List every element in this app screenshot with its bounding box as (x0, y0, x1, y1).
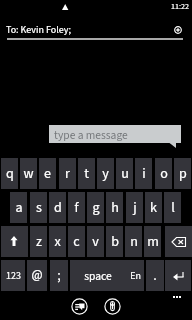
staticText: m (147, 232, 159, 252)
button[interactable]: g (87, 192, 104, 223)
button[interactable]: New message (71, 298, 88, 315)
staticText: l (171, 198, 175, 218)
staticText: n (130, 232, 138, 252)
staticText: u (121, 164, 129, 184)
staticText: h (111, 198, 119, 218)
button[interactable]: Attach (104, 298, 121, 315)
button[interactable]: x (49, 226, 66, 257)
staticText: w (23, 164, 34, 184)
staticText: space (84, 268, 112, 284)
button[interactable]: Enter (165, 260, 191, 291)
button[interactable]: j (126, 192, 143, 223)
button[interactable]: t (78, 158, 95, 189)
button[interactable]: e (39, 158, 56, 189)
button[interactable]: Add recipient (172, 24, 184, 36)
staticText: 123 (6, 269, 21, 283)
button[interactable]: u (116, 158, 133, 189)
button[interactable]: . (146, 260, 164, 291)
staticText: t (84, 164, 89, 184)
staticText: a (15, 198, 23, 218)
staticText: i (142, 164, 146, 184)
staticText: k (150, 198, 157, 218)
staticText: 11:22 (171, 1, 189, 12)
staticText: p (179, 164, 187, 184)
staticText: . (153, 266, 157, 286)
staticText: f (74, 198, 79, 218)
button[interactable]: ; (50, 260, 68, 291)
staticText: @ (31, 266, 43, 285)
button[interactable]: v (87, 226, 104, 257)
button[interactable]: p (174, 158, 191, 189)
button[interactable]: o (155, 158, 172, 189)
button[interactable]: n (125, 226, 142, 257)
staticText: type a message (54, 127, 128, 143)
button[interactable]: 123 (1, 260, 25, 291)
staticText: v (92, 232, 99, 252)
button[interactable]: f (68, 192, 85, 223)
button[interactable]: b (106, 226, 123, 257)
button[interactable]: z (30, 226, 47, 257)
button[interactable]: w (20, 158, 37, 189)
staticText: q (6, 164, 14, 184)
staticText: d (54, 198, 62, 218)
staticText: En (130, 269, 141, 283)
button[interactable]: More options (173, 296, 181, 298)
button[interactable]: y (97, 158, 114, 189)
staticText: b (111, 232, 119, 252)
staticText: g (92, 198, 100, 218)
staticText: ; (57, 266, 61, 286)
staticText: j (133, 198, 137, 218)
button[interactable]: space (70, 260, 126, 291)
button[interactable]: i (135, 158, 152, 189)
button[interactable]: h (106, 192, 123, 223)
staticText: y (102, 164, 109, 184)
staticText: To: Kevin Foley; (6, 23, 71, 37)
button[interactable]: q (1, 158, 18, 189)
staticText: x (54, 232, 61, 252)
button[interactable]: m (144, 226, 161, 257)
button[interactable]: Backspace (165, 226, 192, 257)
button[interactable]: c (68, 226, 85, 257)
button[interactable]: En (126, 260, 144, 291)
button[interactable]: a (10, 192, 27, 223)
button[interactable]: s (30, 192, 47, 223)
button[interactable]: d (49, 192, 66, 223)
staticText: o (160, 164, 168, 184)
button[interactable]: Shift (1, 226, 28, 257)
button[interactable]: @ (27, 260, 47, 291)
staticText: z (36, 232, 42, 252)
staticText: c (73, 232, 80, 252)
button[interactable]: k (145, 192, 162, 223)
staticText: r (65, 164, 70, 184)
button[interactable]: r (59, 158, 76, 189)
button[interactable]: l (164, 192, 181, 223)
staticText: e (44, 164, 51, 184)
staticText: s (36, 198, 42, 218)
